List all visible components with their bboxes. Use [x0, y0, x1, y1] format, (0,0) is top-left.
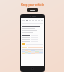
button[interactable] — [22, 41, 43, 42]
staticText: Keep your vehicle — [21, 3, 44, 7]
button[interactable] — [22, 37, 43, 38]
button[interactable] — [22, 43, 43, 45]
staticText: Enable — [30, 9, 35, 11]
button[interactable] — [22, 39, 43, 40]
button[interactable]: Home — [31, 67, 34, 70]
button[interactable]: Enable — [27, 8, 38, 12]
button[interactable] — [22, 35, 43, 36]
